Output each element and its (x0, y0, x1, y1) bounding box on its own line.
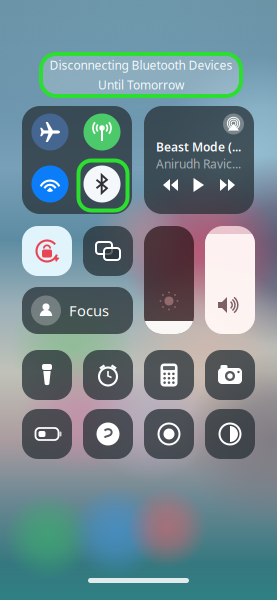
button[interactable]: Play (193, 178, 205, 192)
button[interactable]: Previous (163, 179, 178, 191)
button[interactable]: Bluetooth (83, 165, 120, 202)
staticText: Beast Mode (... (156, 139, 241, 155)
button[interactable]: Airplane Mode (31, 113, 68, 150)
button[interactable]: Wi-Fi (31, 165, 68, 202)
staticText: Focus (69, 301, 109, 320)
button[interactable]: Timer (83, 350, 133, 400)
staticText: Disconnecting Bluetooth Devices (49, 57, 232, 73)
button[interactable]: Calculator (144, 350, 194, 400)
button[interactable]: Camera (205, 350, 255, 400)
staticText: Until Tomorrow (98, 77, 184, 93)
staticText: Anirudh Ravic... (156, 156, 241, 172)
button[interactable]: Rotation Lock (22, 226, 72, 276)
button[interactable]: Focus (22, 287, 133, 334)
button[interactable]: Brightness (144, 226, 194, 334)
button[interactable]: Cellular Data (83, 113, 120, 150)
button[interactable]: Low Power Mode (22, 409, 72, 459)
button[interactable]: Volume (205, 226, 255, 334)
button[interactable]: Music Recognition (83, 409, 133, 459)
button[interactable]: AirPlay (223, 113, 244, 134)
button[interactable]: Screen Mirroring (83, 226, 133, 276)
button[interactable]: Flashlight (22, 350, 72, 400)
button[interactable]: Dark Mode (205, 409, 255, 459)
button[interactable]: Next (220, 179, 235, 191)
button[interactable]: Screen Recording (144, 409, 194, 459)
